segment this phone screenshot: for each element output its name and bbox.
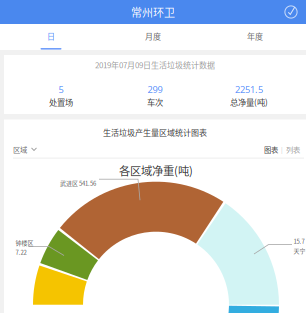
button[interactable]: 日	[0, 24, 102, 50]
button[interactable]: 列表	[286, 144, 300, 155]
staticText: 日	[47, 30, 55, 42]
staticText: 列表	[286, 144, 300, 155]
button[interactable]: 图表	[264, 144, 278, 155]
staticText: 常州环卫	[131, 4, 175, 20]
button[interactable]: 年度	[204, 24, 306, 50]
staticText: 5	[58, 83, 63, 96]
staticText: 299	[147, 83, 162, 96]
button[interactable]: Report history	[284, 5, 298, 19]
staticText: 区域	[13, 144, 27, 155]
staticText: 车次	[147, 96, 163, 108]
button[interactable]: 月度	[102, 24, 204, 50]
button[interactable]: 区域	[13, 144, 37, 155]
staticText: 年度	[247, 30, 263, 42]
staticText: 生活垃圾产生量区域统计图表	[103, 126, 207, 138]
staticText: 处置场	[49, 96, 73, 108]
staticText: 各区域净重(吨)	[119, 162, 193, 178]
staticText: 总净量(吨)	[230, 96, 268, 108]
staticText: 图表	[264, 144, 278, 155]
staticText: 2251.5	[235, 83, 263, 96]
staticText: 7.22	[15, 248, 26, 256]
staticText: 天宁	[293, 246, 305, 255]
staticText: 15.7	[293, 237, 304, 245]
staticText: 2019年07月09日生活垃圾统计数据	[95, 59, 215, 71]
staticText: |	[280, 145, 284, 154]
staticText: 月度	[145, 30, 161, 42]
staticText: 武进区 541.56	[60, 179, 96, 187]
staticText: 钟楼区	[15, 238, 33, 247]
